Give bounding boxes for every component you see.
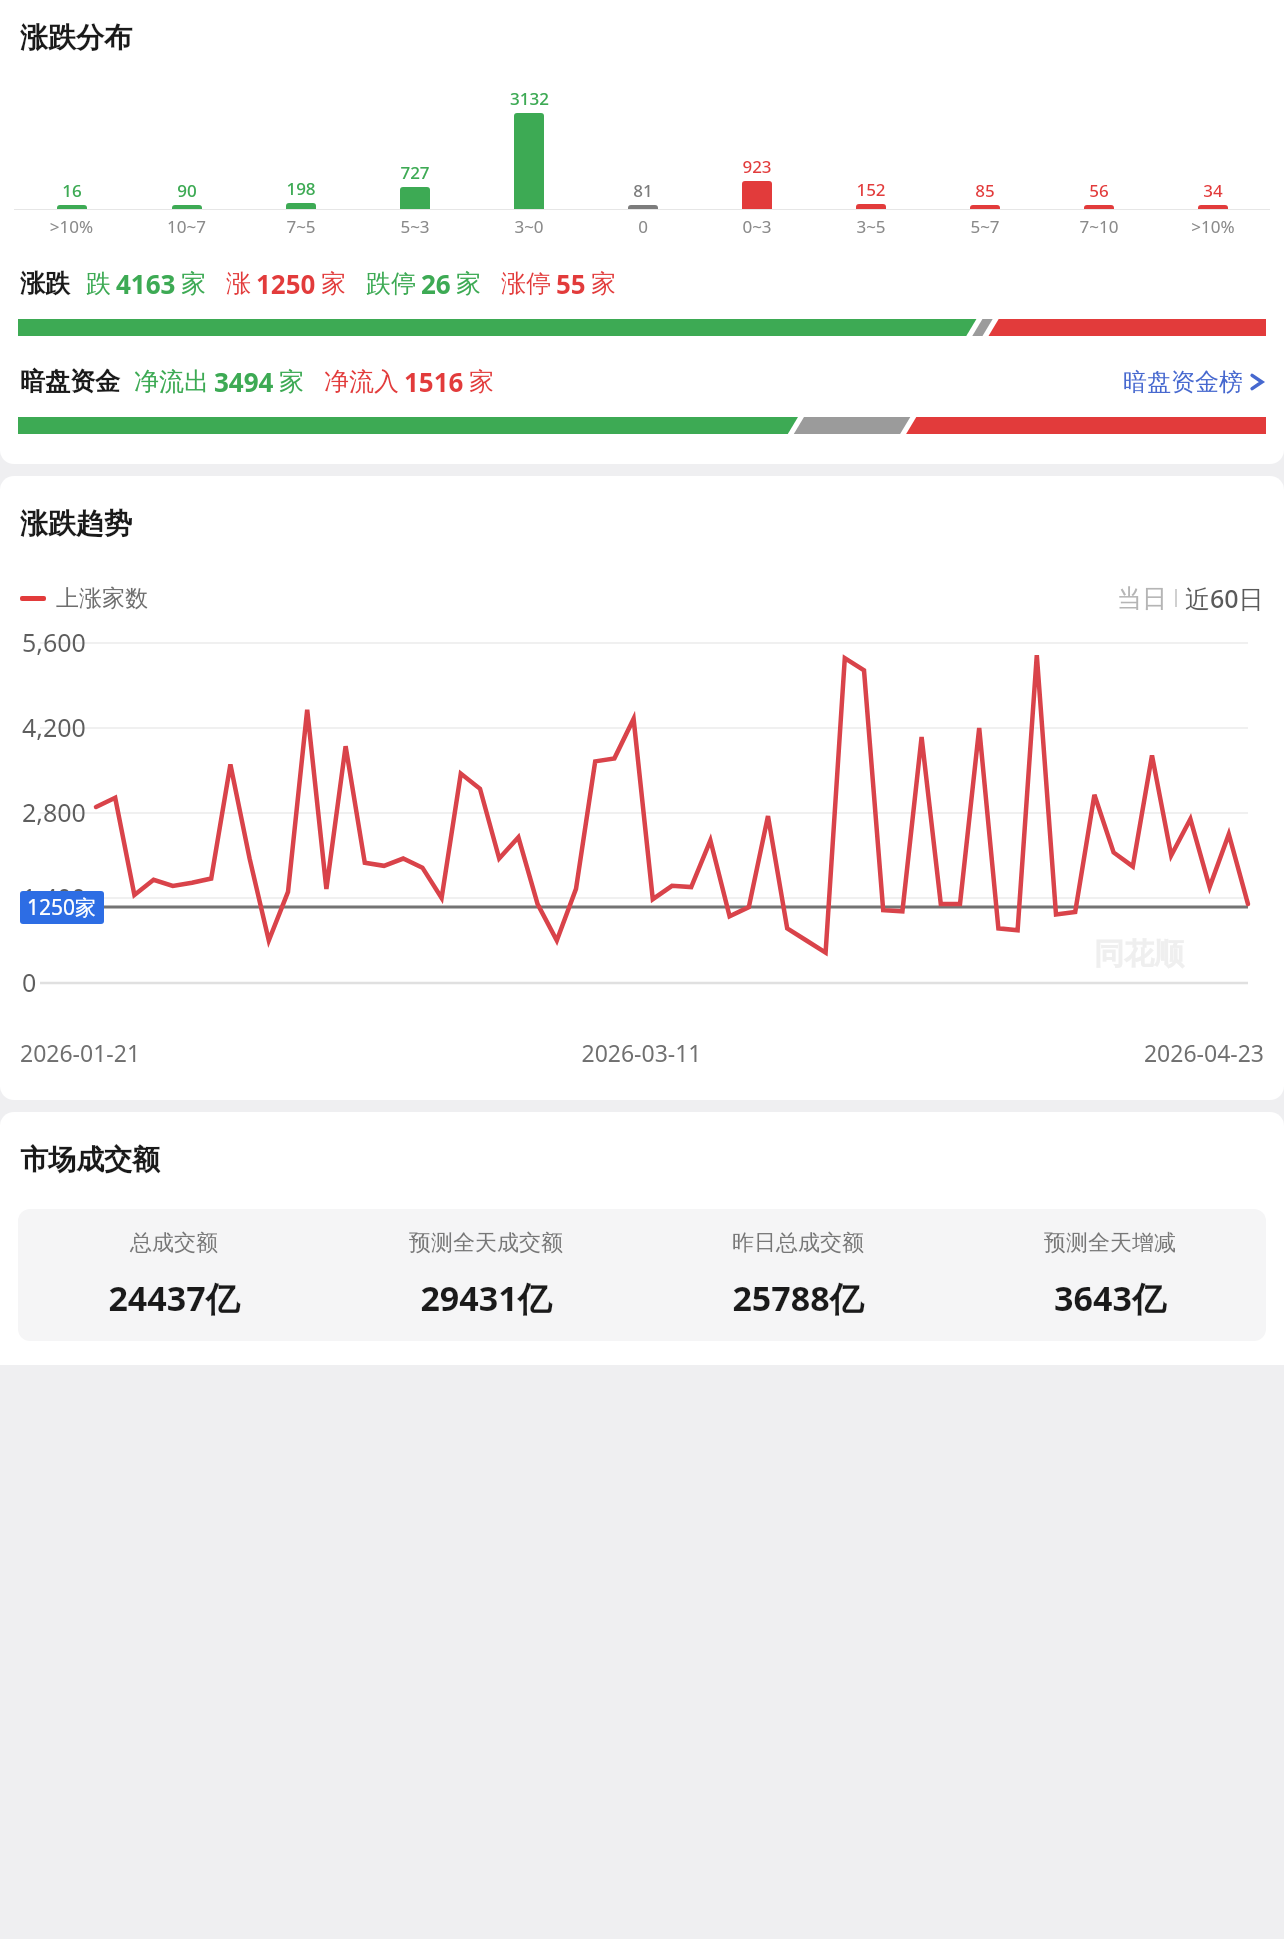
button[interactable]: 预测全天成交额: [330, 1229, 642, 1321]
staticText: 1250: [256, 266, 316, 301]
staticText: 3~0: [472, 215, 586, 238]
staticText: 5~7: [928, 215, 1042, 238]
button[interactable]: 当日: [1117, 581, 1264, 615]
staticText: 3132: [510, 87, 549, 110]
staticText: 16: [62, 179, 82, 202]
staticText: 净流入: [324, 366, 399, 397]
staticText: 26: [421, 266, 451, 301]
button[interactable]: 暗盘资金榜: [1123, 367, 1264, 397]
staticText: 暗盘资金榜: [1123, 367, 1243, 397]
staticText: 24437亿: [108, 1275, 240, 1321]
staticText: 近60日: [1185, 581, 1264, 615]
staticText: 涨跌分布: [20, 20, 132, 55]
button[interactable]: 总成交额: [18, 1229, 330, 1321]
staticText: 家: [469, 366, 494, 397]
staticText: 2026-03-11: [434, 1037, 849, 1068]
staticText: 暗盘资金: [20, 366, 120, 397]
staticText: 152: [856, 178, 886, 201]
button[interactable]: 预测全天增减: [954, 1229, 1266, 1321]
staticText: 7~5: [244, 215, 358, 238]
staticText: 跌停: [366, 268, 416, 299]
staticText: 3~5: [814, 215, 928, 238]
staticText: >10%: [1156, 215, 1270, 238]
staticText: 家: [321, 268, 346, 299]
staticText: 29431亿: [420, 1275, 552, 1321]
staticText: 总成交额: [130, 1229, 218, 1257]
staticText: 预测全天增减: [1044, 1229, 1176, 1257]
staticText: 涨跌趋势: [20, 506, 132, 541]
staticText: 0: [586, 215, 700, 238]
staticText: 同花顺: [1094, 935, 1184, 973]
staticText: 家: [456, 268, 481, 299]
staticText: 4,200: [22, 710, 86, 744]
staticText: 0: [22, 965, 37, 999]
staticText: 涨: [226, 268, 251, 299]
staticText: 923: [742, 155, 772, 178]
staticText: 1516: [404, 364, 464, 399]
staticText: 2026-04-23: [849, 1037, 1264, 1068]
staticText: 56: [1089, 179, 1109, 202]
staticText: 85: [975, 179, 995, 202]
staticText: 0~3: [700, 215, 814, 238]
staticText: 昨日总成交额: [732, 1229, 864, 1257]
staticText: 3643亿: [1054, 1275, 1166, 1321]
staticText: 90: [177, 179, 197, 202]
staticText: 4163: [116, 266, 176, 301]
staticText: 10~7: [129, 215, 244, 238]
staticText: 5,600: [22, 625, 86, 659]
staticText: 当日: [1117, 583, 1167, 614]
staticText: 1,400: [22, 880, 86, 914]
staticText: 上涨家数: [56, 584, 148, 613]
staticText: 家: [279, 366, 304, 397]
staticText: 涨停: [501, 268, 551, 299]
staticText: 7~10: [1042, 215, 1156, 238]
staticText: 3494: [214, 364, 274, 399]
staticText: 198: [286, 177, 316, 200]
staticText: 预测全天成交额: [409, 1229, 563, 1257]
staticText: >10%: [14, 215, 129, 238]
staticText: 2026-01-21: [20, 1037, 434, 1068]
staticText: 1250家: [27, 893, 97, 922]
staticText: 家: [591, 268, 616, 299]
staticText: 727: [400, 161, 430, 184]
staticText: 55: [556, 266, 586, 301]
staticText: 34: [1203, 179, 1223, 202]
staticText: 涨跌: [20, 268, 70, 299]
staticText: 5~3: [358, 215, 472, 238]
staticText: 净流出: [134, 366, 209, 397]
button[interactable]: 涨跌: [20, 266, 1264, 301]
staticText: 市场成交额: [20, 1142, 160, 1177]
staticText: 家: [181, 268, 206, 299]
staticText: 25788亿: [732, 1275, 864, 1321]
staticText: 跌: [86, 268, 111, 299]
button[interactable]: 昨日总成交额: [642, 1229, 954, 1321]
staticText: 2,800: [22, 795, 86, 829]
staticText: 81: [633, 179, 653, 202]
